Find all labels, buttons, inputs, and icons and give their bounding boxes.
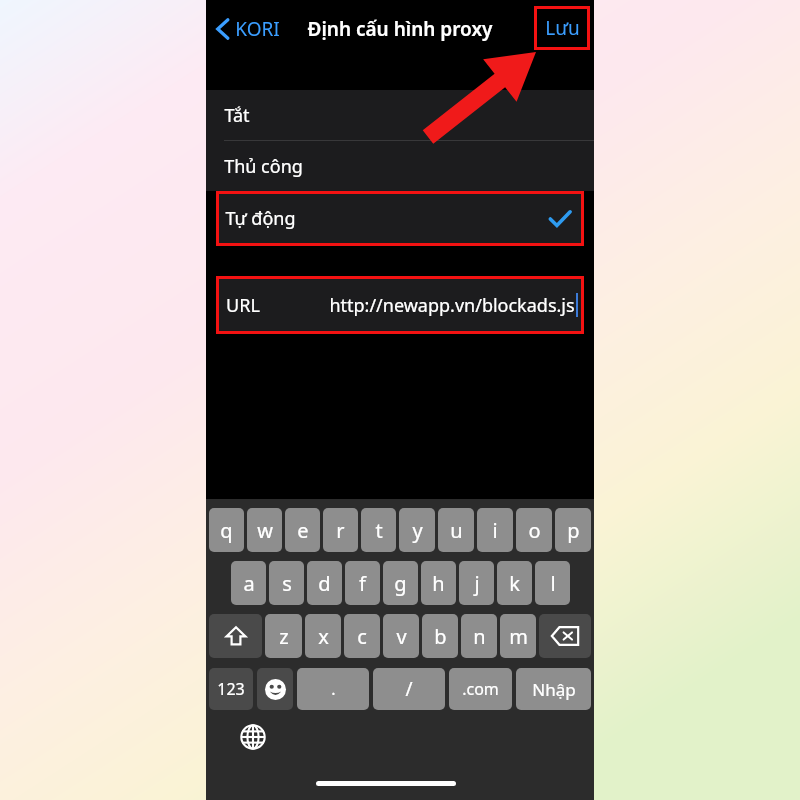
staticText: q xyxy=(220,517,233,544)
button[interactable]: 123 xyxy=(209,668,253,710)
staticText: v xyxy=(396,623,407,650)
button[interactable]: i xyxy=(477,508,513,552)
staticText: h xyxy=(432,570,445,597)
staticText: k xyxy=(509,570,520,597)
button[interactable]: Lưu xyxy=(534,6,590,50)
button[interactable]: e xyxy=(285,508,320,552)
button[interactable]: Shift xyxy=(209,614,262,658)
button[interactable]: g xyxy=(383,561,418,605)
staticText: x xyxy=(318,623,329,650)
button[interactable]: b xyxy=(422,614,458,658)
staticText: Nhập xyxy=(532,678,576,701)
staticText: w xyxy=(257,517,273,544)
button[interactable]: / xyxy=(373,668,445,710)
staticText: u xyxy=(450,517,463,544)
staticText: s xyxy=(282,570,292,597)
staticText: .com xyxy=(462,678,499,700)
button[interactable]: d xyxy=(307,561,342,605)
staticText: Thủ công xyxy=(224,154,303,179)
staticText: o xyxy=(528,517,541,544)
staticText: c xyxy=(357,623,367,650)
staticText: f xyxy=(359,570,366,597)
button[interactable]: c xyxy=(344,614,380,658)
staticText: l xyxy=(550,570,556,597)
staticText: Định cấu hình proxy xyxy=(307,16,493,42)
staticText: http://newapp.vn/blockads.js xyxy=(329,293,575,318)
button[interactable]: x xyxy=(305,614,341,658)
staticText: g xyxy=(394,570,407,597)
staticText: t xyxy=(375,517,383,544)
button[interactable]: k xyxy=(497,561,532,605)
button[interactable]: n xyxy=(461,614,497,658)
staticText: Tắt xyxy=(224,103,250,128)
staticText: 123 xyxy=(217,678,245,700)
staticText: b xyxy=(434,623,447,650)
button[interactable]: r xyxy=(323,508,358,552)
button[interactable]: Tự động xyxy=(216,191,584,246)
button[interactable]: URL xyxy=(216,276,584,334)
staticText: Lưu xyxy=(545,15,580,41)
staticText: URL xyxy=(226,293,260,318)
staticText: KORI xyxy=(235,16,280,42)
staticText: / xyxy=(405,676,413,702)
button[interactable]: w xyxy=(247,508,282,552)
staticText: n xyxy=(473,623,486,650)
staticText: y xyxy=(412,517,423,544)
button[interactable]: l xyxy=(535,561,570,605)
button[interactable]: j xyxy=(459,561,494,605)
button[interactable]: q xyxy=(209,508,244,552)
staticText: i xyxy=(492,517,498,544)
button[interactable]: .com xyxy=(449,668,512,710)
button[interactable]: Emoji xyxy=(257,668,293,710)
button[interactable]: Thủ công xyxy=(206,141,594,191)
button[interactable]: z xyxy=(265,614,302,658)
button[interactable]: a xyxy=(231,561,266,605)
staticText: j xyxy=(474,570,480,597)
button[interactable]: o xyxy=(516,508,552,552)
button[interactable]: p xyxy=(555,508,591,552)
button[interactable]: v xyxy=(383,614,419,658)
button[interactable]: s xyxy=(269,561,304,605)
staticText: e xyxy=(297,517,309,544)
button[interactable]: Change keyboard xyxy=(238,722,268,752)
button[interactable]: h xyxy=(421,561,456,605)
button[interactable]: y xyxy=(399,508,435,552)
button[interactable]: KORI xyxy=(216,16,280,42)
button[interactable]: m xyxy=(500,614,536,658)
staticText: d xyxy=(318,570,331,597)
button[interactable]: Tắt xyxy=(206,90,594,140)
staticText: z xyxy=(279,623,289,650)
staticText: a xyxy=(243,570,255,597)
button[interactable]: f xyxy=(345,561,380,605)
button[interactable]: . xyxy=(297,668,369,710)
staticText: r xyxy=(336,517,345,544)
button[interactable]: u xyxy=(438,508,474,552)
staticText: . xyxy=(331,678,336,700)
button[interactable]: t xyxy=(361,508,396,552)
button[interactable]: Backspace xyxy=(539,614,591,658)
staticText: Tự động xyxy=(225,206,296,231)
staticText: p xyxy=(567,517,580,544)
staticText: m xyxy=(509,623,528,650)
button[interactable]: Nhập xyxy=(516,668,591,710)
